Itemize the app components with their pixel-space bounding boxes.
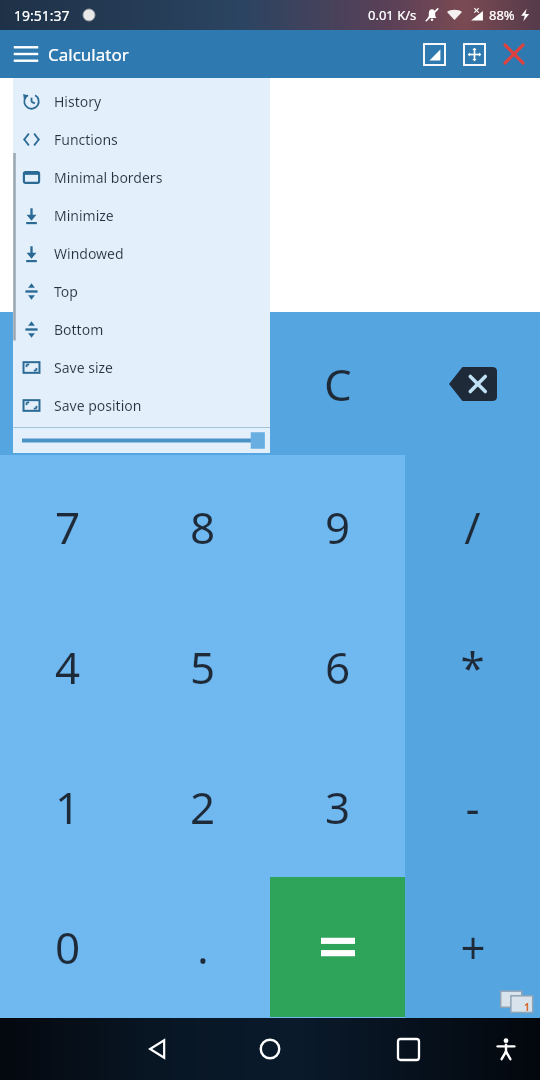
button[interactable]: Backspace bbox=[405, 312, 540, 455]
button[interactable]: Move bbox=[454, 34, 494, 74]
staticText: Minimal borders bbox=[54, 168, 163, 187]
button[interactable]: Opacity slider bbox=[13, 428, 270, 453]
button[interactable]: 5 bbox=[135, 597, 270, 737]
button[interactable]: 4 bbox=[0, 597, 135, 737]
button[interactable] bbox=[0, 78, 540, 312]
staticText: 7 bbox=[55, 497, 81, 557]
button[interactable]: 8 bbox=[135, 457, 270, 597]
staticText: + bbox=[460, 917, 486, 977]
button[interactable]: Minimal borders bbox=[13, 158, 270, 196]
button[interactable]: Windows bbox=[500, 988, 534, 1014]
button[interactable]: Recents bbox=[380, 1021, 436, 1077]
button[interactable]: / bbox=[405, 457, 540, 597]
staticText: Calculator bbox=[48, 43, 129, 66]
staticText: 3 bbox=[325, 777, 351, 837]
staticText: / bbox=[464, 497, 481, 557]
staticText: 4 bbox=[55, 637, 81, 697]
staticText: Top bbox=[54, 282, 78, 301]
button[interactable]: Windowed bbox=[13, 234, 270, 272]
button[interactable]: - bbox=[405, 737, 540, 877]
button[interactable]: Resize bbox=[414, 34, 454, 74]
button[interactable]: Close bbox=[494, 34, 534, 74]
staticText: 0.01 K/s bbox=[368, 6, 417, 24]
staticText: Windowed bbox=[54, 244, 124, 263]
button[interactable]: Bottom bbox=[13, 310, 270, 348]
button[interactable]: Accessibility bbox=[484, 1027, 528, 1071]
button[interactable]: 0 bbox=[0, 877, 135, 1017]
staticText: . bbox=[197, 917, 209, 977]
staticText: - bbox=[465, 777, 480, 837]
button[interactable]: Minimize bbox=[13, 196, 270, 234]
staticText: History bbox=[54, 92, 102, 111]
staticText: 88% bbox=[489, 6, 515, 24]
button[interactable]: * bbox=[405, 597, 540, 737]
staticText: Functions bbox=[54, 130, 118, 149]
button[interactable]: C bbox=[270, 312, 405, 455]
button[interactable]: 9 bbox=[270, 457, 405, 597]
staticText: 0 bbox=[55, 917, 81, 977]
staticText: 9 bbox=[325, 497, 351, 557]
button[interactable]: 1 bbox=[0, 737, 135, 877]
button[interactable]: Save position bbox=[13, 386, 270, 424]
button[interactable]: Save size bbox=[13, 348, 270, 386]
staticText: 8 bbox=[190, 497, 216, 557]
button[interactable]: Back bbox=[130, 1021, 186, 1077]
button[interactable]: 6 bbox=[270, 597, 405, 737]
staticText: 6 bbox=[325, 637, 351, 697]
button[interactable] bbox=[270, 877, 405, 1017]
button[interactable]: . bbox=[135, 877, 270, 1017]
button[interactable]: 7 bbox=[0, 457, 135, 597]
button[interactable]: + bbox=[405, 877, 540, 1017]
staticText: Save size bbox=[54, 358, 113, 377]
button[interactable]: Home bbox=[242, 1021, 298, 1077]
button[interactable]: 2 bbox=[135, 737, 270, 877]
staticText: 1 bbox=[524, 1000, 530, 1014]
staticText: * bbox=[460, 637, 485, 697]
button[interactable]: 3 bbox=[270, 737, 405, 877]
staticText: 1 bbox=[55, 777, 81, 837]
button[interactable]: History bbox=[13, 82, 270, 120]
button[interactable]: Top bbox=[13, 272, 270, 310]
staticText: Minimize bbox=[54, 206, 114, 225]
button[interactable]: Functions bbox=[13, 120, 270, 158]
staticText: 19:51:37 bbox=[14, 6, 70, 25]
button[interactable]: Menu bbox=[6, 34, 46, 74]
staticText: Save position bbox=[54, 396, 142, 415]
staticText: C bbox=[324, 354, 352, 414]
staticText: Bottom bbox=[54, 320, 104, 339]
staticText: 5 bbox=[190, 637, 216, 697]
staticText: 2 bbox=[190, 777, 216, 837]
